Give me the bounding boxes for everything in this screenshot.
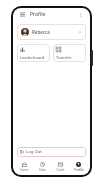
button[interactable]: Menu — [18, 10, 27, 19]
button[interactable]: Cards — [52, 161, 69, 173]
button[interactable]: Rebecca — [17, 24, 86, 40]
staticText: Log Out — [26, 149, 42, 155]
staticText: Cards — [56, 168, 65, 172]
button[interactable]: Profile — [70, 161, 87, 173]
button[interactable]: More options — [76, 10, 85, 19]
staticText: Home — [20, 168, 29, 172]
staticText: Profile — [74, 168, 84, 172]
staticText: Transfer — [56, 55, 72, 59]
staticText: Rebecca — [32, 29, 50, 35]
button[interactable]: Transfer — [53, 44, 86, 62]
button[interactable]: Log Out — [17, 147, 86, 157]
button[interactable]: Stats — [34, 161, 51, 173]
staticText: Profile — [30, 11, 46, 18]
button[interactable]: Leaderboard — [17, 44, 50, 62]
button[interactable]: Home — [16, 161, 33, 173]
staticText: Leaderboard — [20, 55, 45, 59]
staticText: Stats — [39, 168, 46, 172]
